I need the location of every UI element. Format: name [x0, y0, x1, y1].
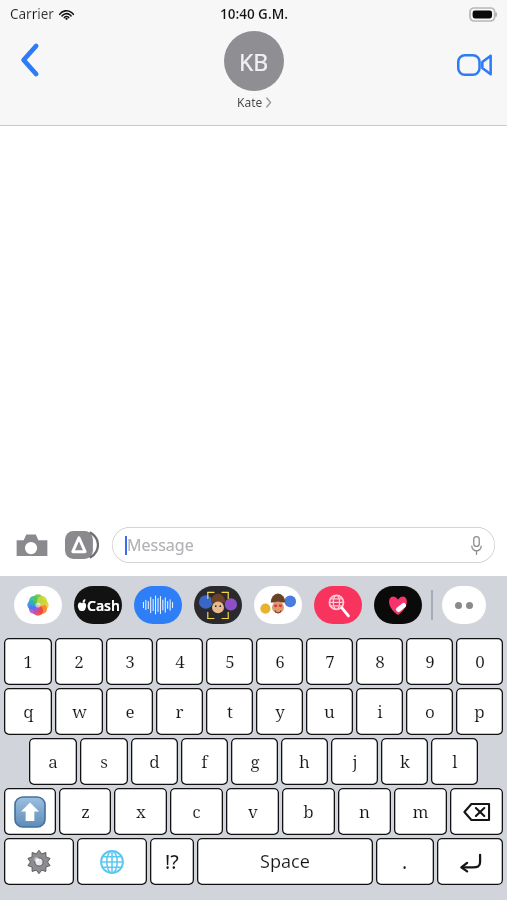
button[interactable]: iMessage app: [254, 586, 302, 624]
button[interactable]: s: [80, 738, 128, 785]
button[interactable]: KB: [224, 31, 284, 110]
button[interactable]: iMessage app: [194, 586, 242, 624]
button[interactable]: j: [331, 738, 378, 785]
button[interactable]: Change language: [77, 838, 147, 885]
button[interactable]: v: [226, 788, 279, 835]
staticText: 8: [375, 650, 385, 673]
staticText: Space: [260, 849, 310, 874]
button[interactable]: 1: [4, 638, 52, 685]
button[interactable]: !?: [150, 838, 194, 885]
staticText: 9: [425, 650, 435, 673]
button[interactable]: a: [29, 738, 77, 785]
button[interactable]: w: [55, 688, 103, 735]
staticText: b: [303, 800, 314, 823]
staticText: s: [100, 750, 108, 773]
button[interactable]: Message: [112, 527, 495, 563]
staticText: l: [452, 750, 458, 773]
staticText: p: [474, 700, 485, 723]
button[interactable]: p: [456, 688, 503, 735]
button[interactable]: Space: [197, 838, 373, 885]
button[interactable]: y: [256, 688, 303, 735]
staticText: z: [81, 800, 90, 823]
button[interactable]: x: [114, 788, 167, 835]
button[interactable]: n: [338, 788, 391, 835]
button[interactable]: f: [181, 738, 228, 785]
button[interactable]: Back: [8, 38, 52, 82]
button[interactable]: k: [381, 738, 428, 785]
staticText: i: [377, 700, 383, 723]
button[interactable]: r: [156, 688, 203, 735]
button[interactable]: Camera: [12, 525, 52, 565]
button[interactable]: i: [356, 688, 403, 735]
button[interactable]: 2: [55, 638, 103, 685]
button[interactable]: iMessage app: [442, 586, 486, 624]
button[interactable]: l: [431, 738, 478, 785]
button[interactable]: u: [306, 688, 353, 735]
button[interactable]: Keyboard settings: [4, 838, 74, 885]
staticText: Cash: [87, 596, 120, 615]
staticText: r: [175, 700, 184, 723]
staticText: y: [275, 700, 285, 723]
button[interactable]: .: [376, 838, 434, 885]
button[interactable]: e: [106, 688, 153, 735]
staticText: 7: [325, 650, 335, 673]
staticText: n: [359, 800, 370, 823]
staticText: Carrier: [10, 5, 54, 23]
staticText: 0: [475, 650, 485, 673]
staticText: t: [227, 700, 233, 723]
button[interactable]: 7: [306, 638, 353, 685]
staticText: 5: [225, 650, 235, 673]
button[interactable]: 3: [106, 638, 153, 685]
staticText: 2: [74, 650, 84, 673]
staticText: g: [250, 750, 260, 773]
staticText: m: [412, 800, 429, 823]
staticText: x: [136, 800, 146, 823]
button[interactable]: iMessage app: [374, 586, 422, 624]
button[interactable]: h: [281, 738, 328, 785]
button[interactable]: q: [4, 688, 52, 735]
button[interactable]: o: [406, 688, 453, 735]
button[interactable]: 6: [256, 638, 303, 685]
button[interactable]: 9: [406, 638, 453, 685]
staticText: f: [201, 750, 208, 773]
staticText: 1: [23, 650, 33, 673]
staticText: 10:40 G.M.: [220, 5, 288, 23]
staticText: v: [248, 800, 258, 823]
staticText: j: [352, 750, 358, 773]
button[interactable]: iMessage app: [134, 586, 182, 624]
staticText: Kate: [237, 94, 263, 110]
staticText: !?: [165, 849, 179, 875]
button[interactable]: iMessage app: [14, 586, 62, 624]
button[interactable]: 0: [456, 638, 503, 685]
staticText: k: [400, 750, 410, 773]
button[interactable]: 8: [356, 638, 403, 685]
staticText: c: [192, 800, 201, 823]
button[interactable]: c: [170, 788, 223, 835]
staticText: 3: [125, 650, 135, 673]
staticText: e: [125, 700, 135, 723]
staticText: u: [324, 700, 335, 723]
staticText: q: [23, 700, 34, 723]
staticText: d: [149, 750, 160, 773]
button[interactable]: b: [282, 788, 335, 835]
staticText: 4: [175, 650, 185, 673]
button[interactable]: 4: [156, 638, 203, 685]
button[interactable]: iMessage app: [314, 586, 362, 624]
button[interactable]: g: [231, 738, 278, 785]
staticText: h: [299, 750, 310, 773]
button[interactable]: m: [394, 788, 447, 835]
button[interactable]: Shift: [4, 788, 56, 835]
button[interactable]: t: [206, 688, 253, 735]
button[interactable]: Return: [437, 838, 503, 885]
staticText: 6: [275, 650, 285, 673]
button[interactable]: FaceTime video call: [451, 42, 497, 88]
button[interactable]: z: [59, 788, 111, 835]
button[interactable]: iMessage apps: [62, 525, 102, 565]
button[interactable]: Backspace: [450, 788, 503, 835]
staticText: o: [425, 700, 435, 723]
button[interactable]: iMessage app: [74, 586, 122, 624]
button[interactable]: d: [131, 738, 178, 785]
staticText: .: [402, 849, 408, 875]
staticText: Message: [127, 534, 194, 556]
button[interactable]: 5: [206, 638, 253, 685]
